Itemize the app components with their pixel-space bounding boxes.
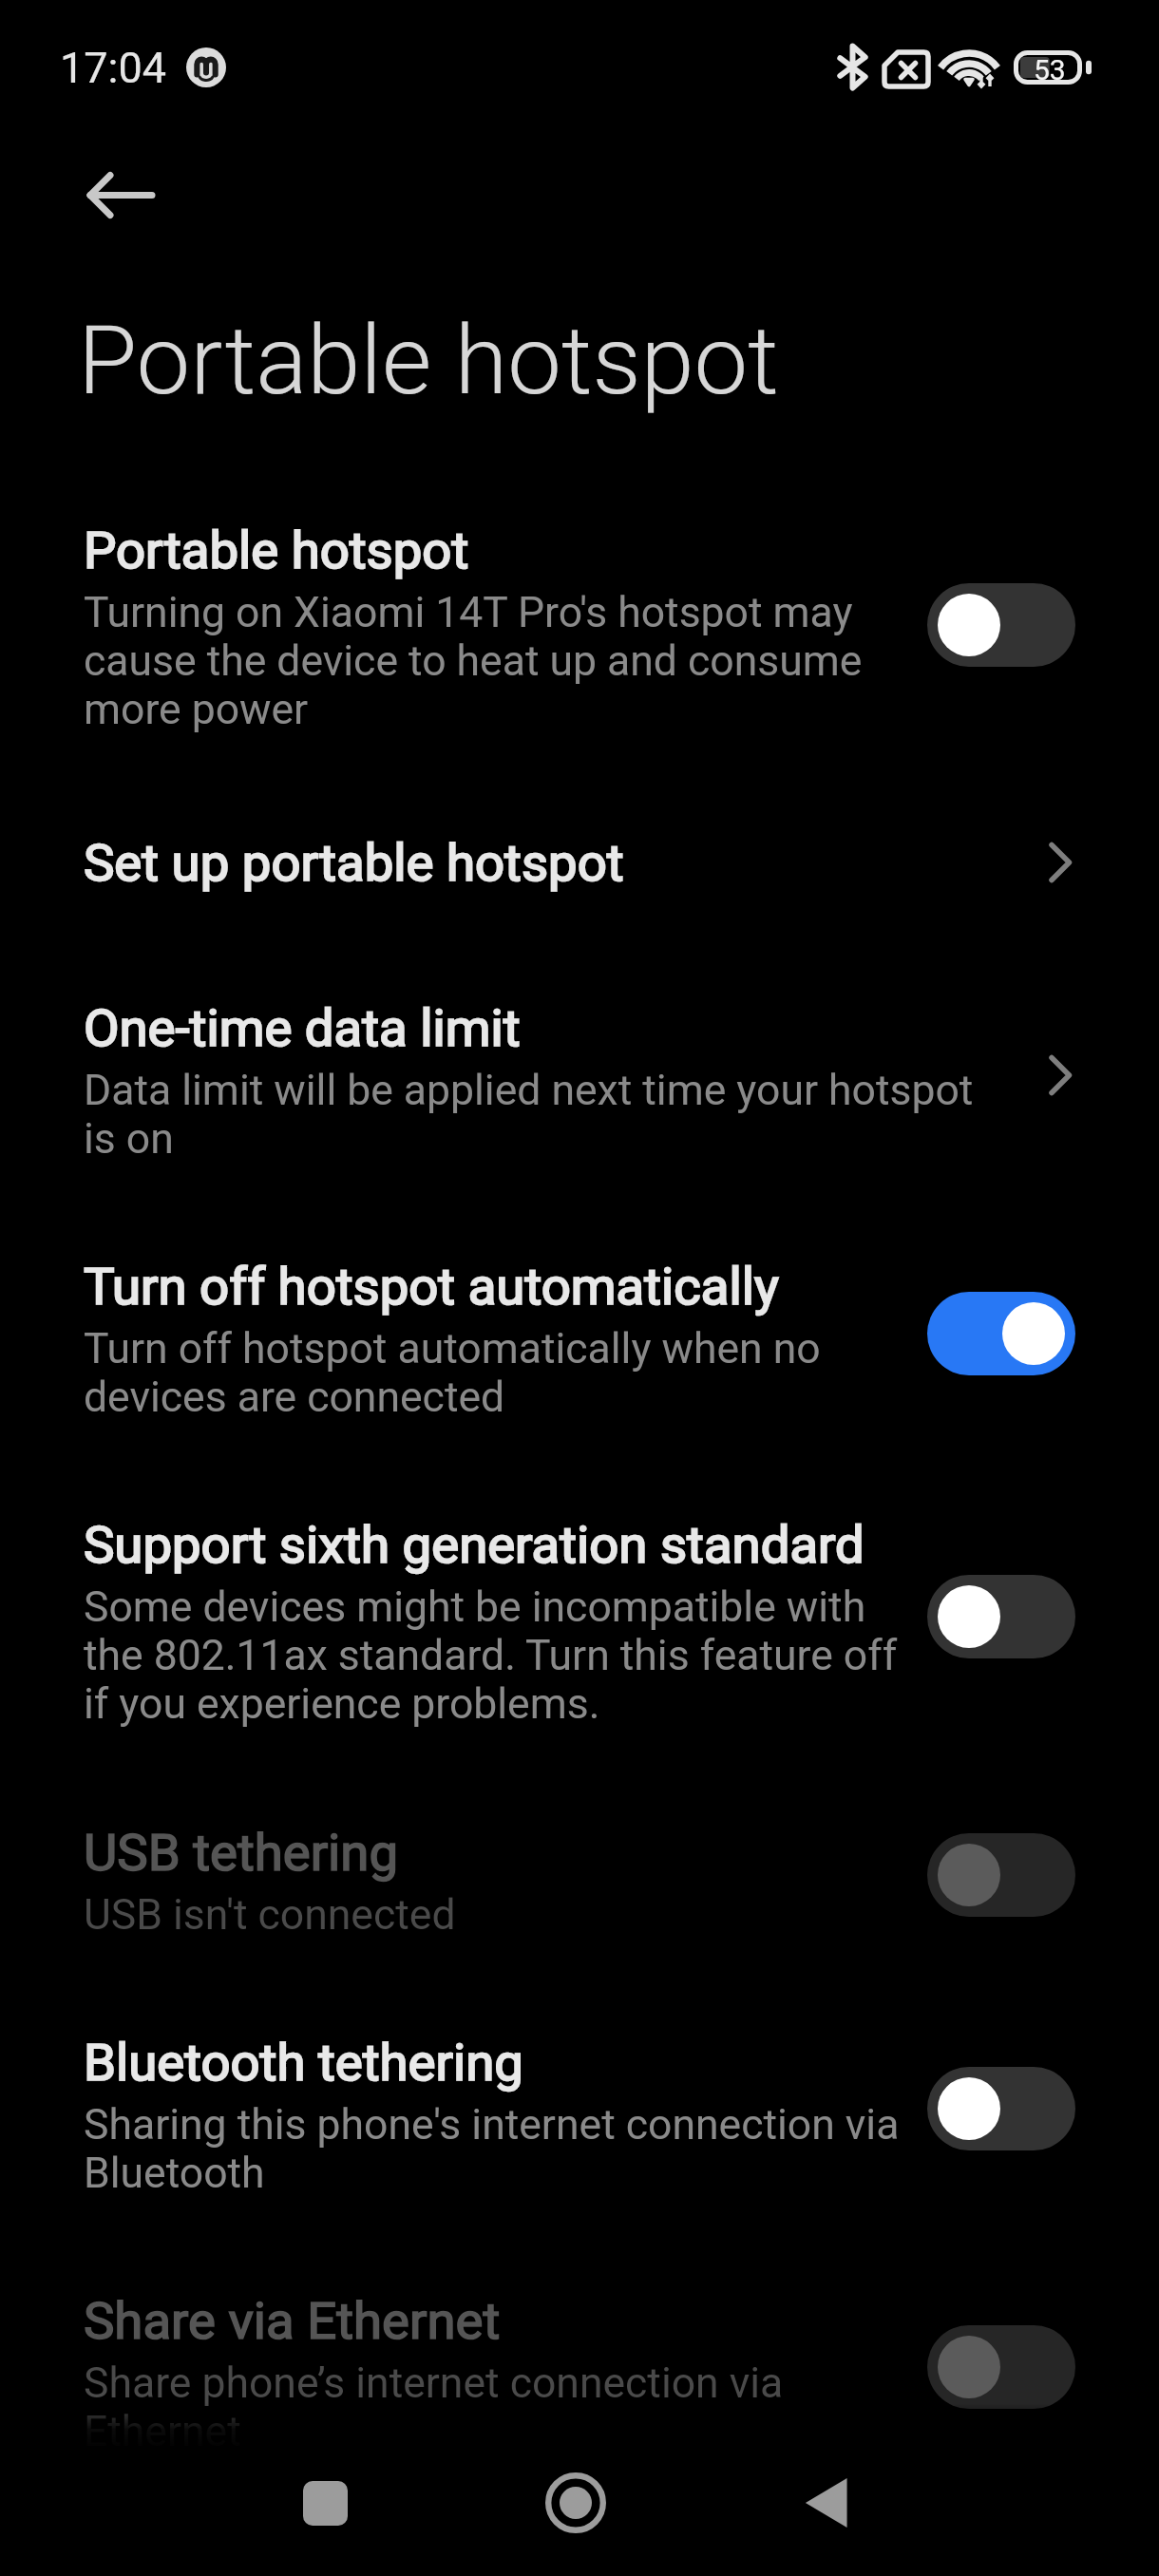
- button[interactable]: One-time data limit: [1023, 1037, 1099, 1113]
- staticText: Data limit will be applied next time you…: [84, 1066, 977, 1164]
- button[interactable]: Share via Ethernet: [84, 2290, 901, 2456]
- staticText: 53: [1034, 53, 1066, 86]
- button[interactable]: Set up portable hotspot: [1023, 824, 1099, 900]
- button[interactable]: Support sixth generation standard: [84, 1514, 920, 1729]
- button[interactable]: Bluetooth tethering: [927, 2067, 1075, 2150]
- button[interactable]: USB tethering: [927, 1833, 1075, 1917]
- staticText: 17:04: [60, 43, 167, 93]
- button[interactable]: Support sixth generation standard: [927, 1575, 1075, 1658]
- button[interactable]: Portable hotspot: [927, 583, 1075, 667]
- staticText: Turn off hotspot automatically when no d…: [84, 1324, 901, 1422]
- staticText: USB tethering: [84, 1822, 399, 1883]
- button[interactable]: Set up portable hotspot: [84, 832, 977, 893]
- button[interactable]: Turn off hotspot automatically: [84, 1256, 901, 1422]
- staticText: Some devices might be incompatible with …: [84, 1582, 920, 1729]
- staticText: One-time data limit: [84, 997, 521, 1058]
- button[interactable]: Back: [49, 152, 154, 239]
- button[interactable]: Recent apps: [258, 2436, 391, 2569]
- button[interactable]: Back: [759, 2436, 892, 2569]
- staticText: Turn off hotspot automatically: [84, 1256, 779, 1316]
- staticText: Sharing this phone's internet connection…: [84, 2100, 901, 2198]
- staticText: Turning on Xiaomi 14T Pro's hotspot may …: [84, 588, 901, 734]
- staticText: Portable hotspot: [78, 304, 779, 416]
- button[interactable]: One-time data limit: [84, 997, 977, 1164]
- button[interactable]: Bluetooth tethering: [84, 2032, 901, 2198]
- staticText: Bluetooth tethering: [84, 2032, 523, 2093]
- staticText: Support sixth generation standard: [84, 1514, 864, 1575]
- staticText: Share via Ethernet: [84, 2290, 501, 2351]
- button[interactable]: Turn off hotspot automatically: [927, 1292, 1075, 1375]
- button[interactable]: USB tethering: [84, 1822, 901, 1940]
- staticText: Share phone’s internet connection via Et…: [84, 2358, 901, 2456]
- staticText: Portable hotspot: [84, 520, 469, 580]
- button[interactable]: Portable hotspot: [84, 520, 901, 734]
- button[interactable]: Home: [509, 2436, 642, 2569]
- button[interactable]: Share via Ethernet: [927, 2325, 1075, 2409]
- staticText: USB isn't connected: [84, 1890, 456, 1940]
- staticText: Set up portable hotspot: [84, 832, 624, 893]
